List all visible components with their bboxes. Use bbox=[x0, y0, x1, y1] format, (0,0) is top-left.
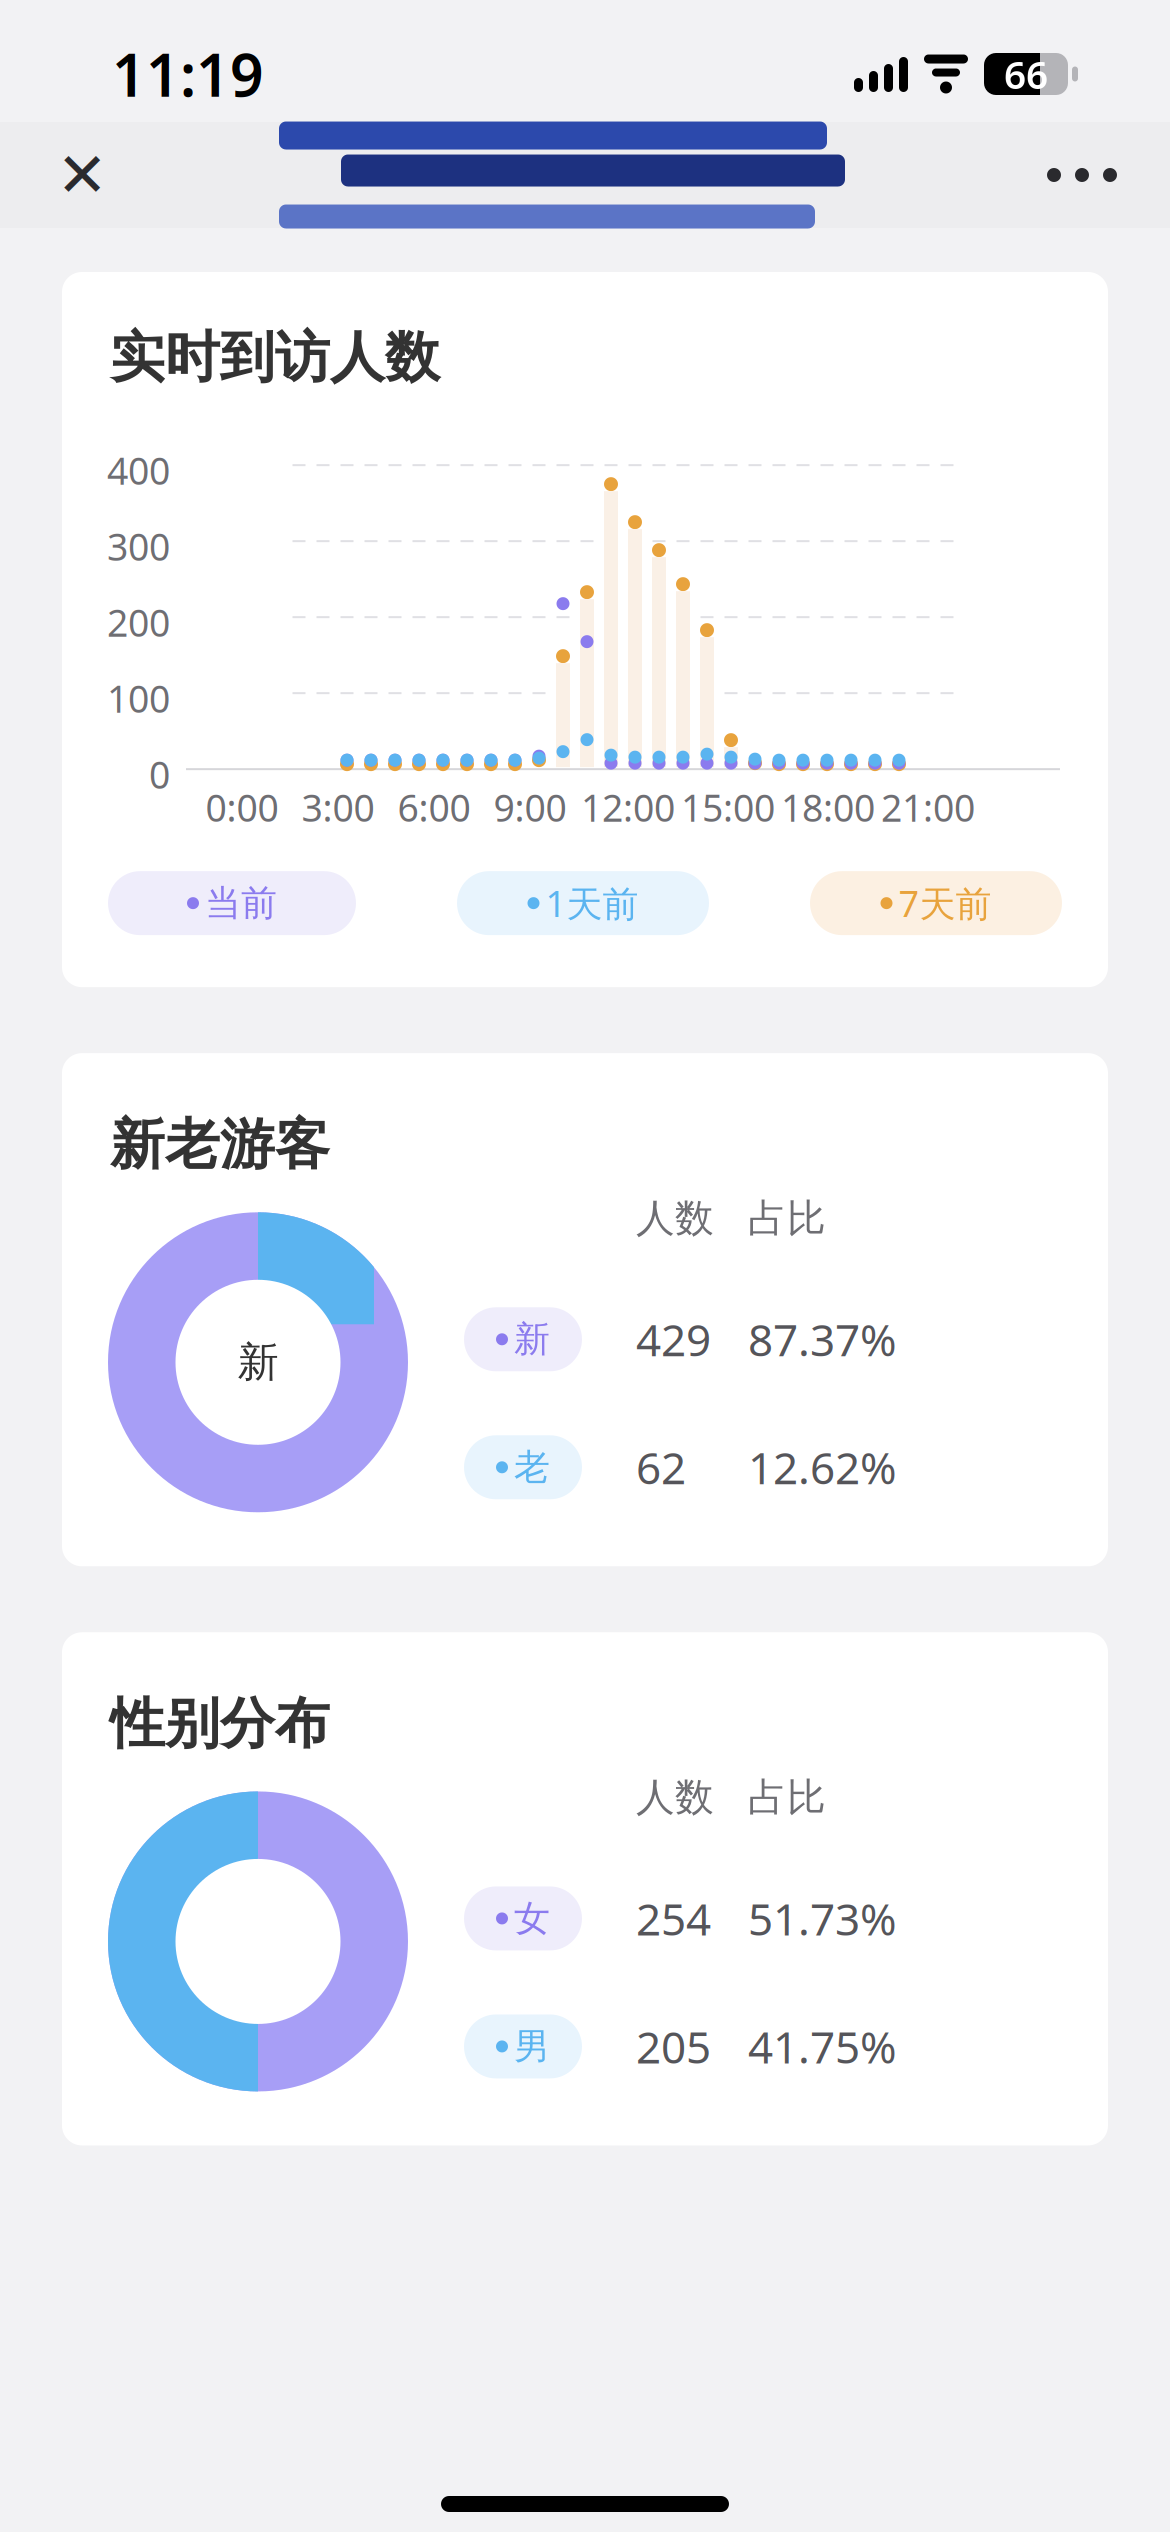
staticText: 12.62% bbox=[748, 1438, 897, 1496]
staticText: 占比 bbox=[748, 1194, 826, 1242]
staticText: 200 bbox=[107, 597, 170, 647]
button[interactable]: 当前 bbox=[108, 871, 356, 935]
button[interactable]: 7天前 bbox=[810, 871, 1062, 935]
staticText: 18:00 bbox=[781, 782, 875, 832]
staticText: 429 bbox=[636, 1310, 711, 1368]
button[interactable]: 1天前 bbox=[457, 871, 709, 935]
staticText: 100 bbox=[107, 673, 170, 723]
staticText: 300 bbox=[107, 521, 170, 571]
staticText: 占比 bbox=[748, 1774, 826, 1821]
staticText: 1天前 bbox=[545, 879, 638, 927]
staticText: 当前 bbox=[205, 881, 277, 925]
button[interactable]: 老 bbox=[464, 1434, 918, 1500]
staticText: 男 bbox=[514, 2024, 550, 2068]
button[interactable]: More options bbox=[1030, 123, 1134, 227]
staticText: 21:00 bbox=[881, 782, 975, 832]
staticText: 0:00 bbox=[205, 782, 278, 832]
button[interactable]: 男 bbox=[464, 2013, 918, 2079]
staticText: 51.73% bbox=[748, 1889, 897, 1948]
button[interactable]: 新 bbox=[464, 1306, 918, 1372]
staticText: 12:00 bbox=[581, 782, 675, 832]
staticText: 女 bbox=[514, 1896, 550, 1940]
staticText: 人数 bbox=[636, 1774, 714, 1821]
staticText: 老 bbox=[514, 1445, 550, 1489]
button[interactable]: Close bbox=[30, 123, 134, 227]
staticText: 新老游客 bbox=[110, 1111, 330, 1178]
staticText: 400 bbox=[107, 445, 170, 495]
staticText: 实时到访人数 bbox=[110, 324, 440, 391]
staticText: 41.75% bbox=[748, 2017, 897, 2076]
staticText: 新 bbox=[237, 1337, 278, 1388]
staticText: 新 bbox=[514, 1317, 550, 1361]
staticText: 性别分布 bbox=[110, 1690, 330, 1757]
staticText: 3:00 bbox=[301, 782, 374, 832]
staticText: ✕ bbox=[56, 140, 107, 210]
staticText: 66 bbox=[1004, 48, 1048, 100]
staticText: 254 bbox=[636, 1889, 711, 1948]
staticText: 7天前 bbox=[898, 879, 991, 927]
button[interactable]: 女 bbox=[464, 1885, 918, 1951]
staticText: 11:19 bbox=[112, 35, 264, 113]
staticText: 9:00 bbox=[493, 782, 566, 832]
staticText: 人数 bbox=[636, 1194, 714, 1242]
staticText: 15:00 bbox=[681, 782, 775, 832]
staticText: 87.37% bbox=[748, 1310, 897, 1368]
staticText: 0 bbox=[149, 749, 170, 799]
staticText: 6:00 bbox=[397, 782, 470, 832]
staticText: 205 bbox=[636, 2017, 711, 2076]
staticText: 62 bbox=[636, 1438, 686, 1496]
